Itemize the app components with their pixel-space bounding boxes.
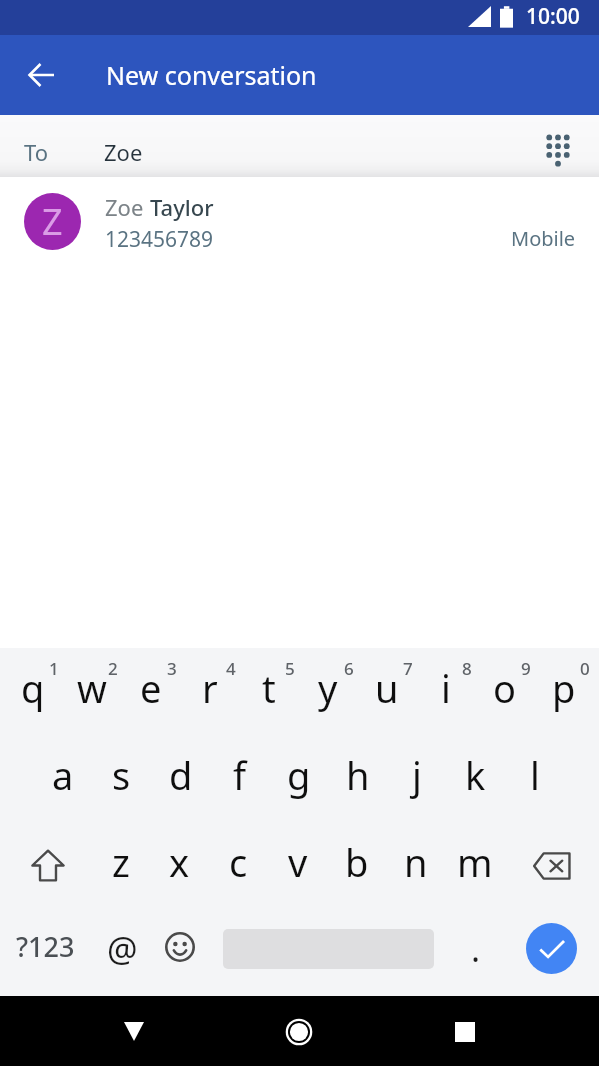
staticText: e <box>140 662 162 714</box>
button[interactable]: t <box>239 648 298 735</box>
button[interactable]: Send <box>503 905 599 992</box>
staticText: Mobile <box>511 225 576 252</box>
button[interactable]: q <box>3 648 62 735</box>
staticText: 10:00 <box>526 2 580 31</box>
button[interactable]: z <box>91 822 150 909</box>
staticText: 7 <box>403 657 413 680</box>
staticText: t <box>262 662 276 714</box>
staticText: 2 <box>108 657 118 680</box>
staticText: j <box>412 749 422 801</box>
button[interactable]: x <box>150 822 209 909</box>
button[interactable]: Shift <box>3 822 91 909</box>
button[interactable]: f <box>210 735 269 822</box>
staticText: c <box>229 836 248 888</box>
staticText: q <box>21 662 45 714</box>
button[interactable]: u <box>357 648 416 735</box>
button[interactable]: l <box>505 735 564 822</box>
staticText: z <box>112 836 130 888</box>
staticText: f <box>233 749 247 801</box>
staticText: Taylor <box>150 192 214 222</box>
staticText: g <box>287 749 311 801</box>
staticText: v <box>288 836 308 888</box>
button[interactable]: Back <box>99 997 169 1066</box>
button[interactable]: Back <box>15 49 67 101</box>
button[interactable]: b <box>327 822 386 909</box>
staticText: . <box>471 926 481 972</box>
staticText: Zoe <box>104 137 143 167</box>
staticText: b <box>345 836 369 888</box>
button[interactable]: Home <box>264 997 334 1066</box>
staticText: k <box>465 749 486 801</box>
button[interactable]: i <box>416 648 475 735</box>
staticText: s <box>112 749 131 801</box>
button[interactable]: g <box>269 735 328 822</box>
button[interactable]: Dialpad <box>534 122 582 170</box>
button[interactable]: y <box>298 648 357 735</box>
button[interactable]: d <box>151 735 210 822</box>
button[interactable]: j <box>387 735 446 822</box>
button[interactable]: e <box>121 648 180 735</box>
staticText: New conversation <box>106 58 317 92</box>
staticText: d <box>169 749 193 801</box>
button[interactable]: ?123 <box>0 905 92 992</box>
staticText: 1 <box>49 657 59 680</box>
staticText: o <box>493 662 516 714</box>
button[interactable]: Z <box>0 184 599 268</box>
button[interactable]: Emoji <box>152 905 212 992</box>
button[interactable]: n <box>386 822 445 909</box>
button[interactable]: w <box>62 648 121 735</box>
button[interactable]: @ <box>92 905 152 992</box>
button[interactable]: . <box>445 905 503 992</box>
staticText: h <box>346 749 370 801</box>
staticText: y <box>318 662 338 714</box>
staticText: a <box>52 749 74 801</box>
button[interactable]: m <box>445 822 504 909</box>
button[interactable]: v <box>268 822 327 909</box>
staticText: 0 <box>580 657 590 680</box>
button[interactable]: k <box>446 735 505 822</box>
staticText: Zoe <box>105 192 150 222</box>
staticText: x <box>169 836 190 888</box>
button[interactable]: h <box>328 735 387 822</box>
staticText: 8 <box>462 657 472 680</box>
staticText: u <box>375 662 399 714</box>
staticText: n <box>404 836 428 888</box>
button[interactable]: Space <box>212 905 445 992</box>
staticText: 5 <box>285 657 295 680</box>
staticText: w <box>77 662 107 714</box>
button[interactable]: o <box>475 648 534 735</box>
staticText: i <box>441 662 451 714</box>
button[interactable]: p <box>534 648 593 735</box>
button[interactable]: Recents <box>430 997 500 1066</box>
staticText: l <box>530 749 540 801</box>
staticText: To <box>24 137 49 167</box>
button[interactable]: s <box>92 735 151 822</box>
staticText: Z <box>42 197 63 246</box>
button[interactable]: a <box>33 735 92 822</box>
staticText: p <box>552 662 576 714</box>
staticText: 4 <box>226 657 236 680</box>
staticText: ?123 <box>16 928 75 965</box>
button[interactable]: Backspace <box>504 822 599 909</box>
staticText: m <box>457 836 493 888</box>
staticText: 123456789 <box>105 225 214 254</box>
staticText: r <box>202 662 218 714</box>
staticText: 3 <box>167 657 177 680</box>
button[interactable]: r <box>180 648 239 735</box>
staticText: 6 <box>344 657 354 680</box>
staticText: @ <box>107 926 138 972</box>
button[interactable]: c <box>209 822 268 909</box>
staticText: 9 <box>521 657 531 680</box>
